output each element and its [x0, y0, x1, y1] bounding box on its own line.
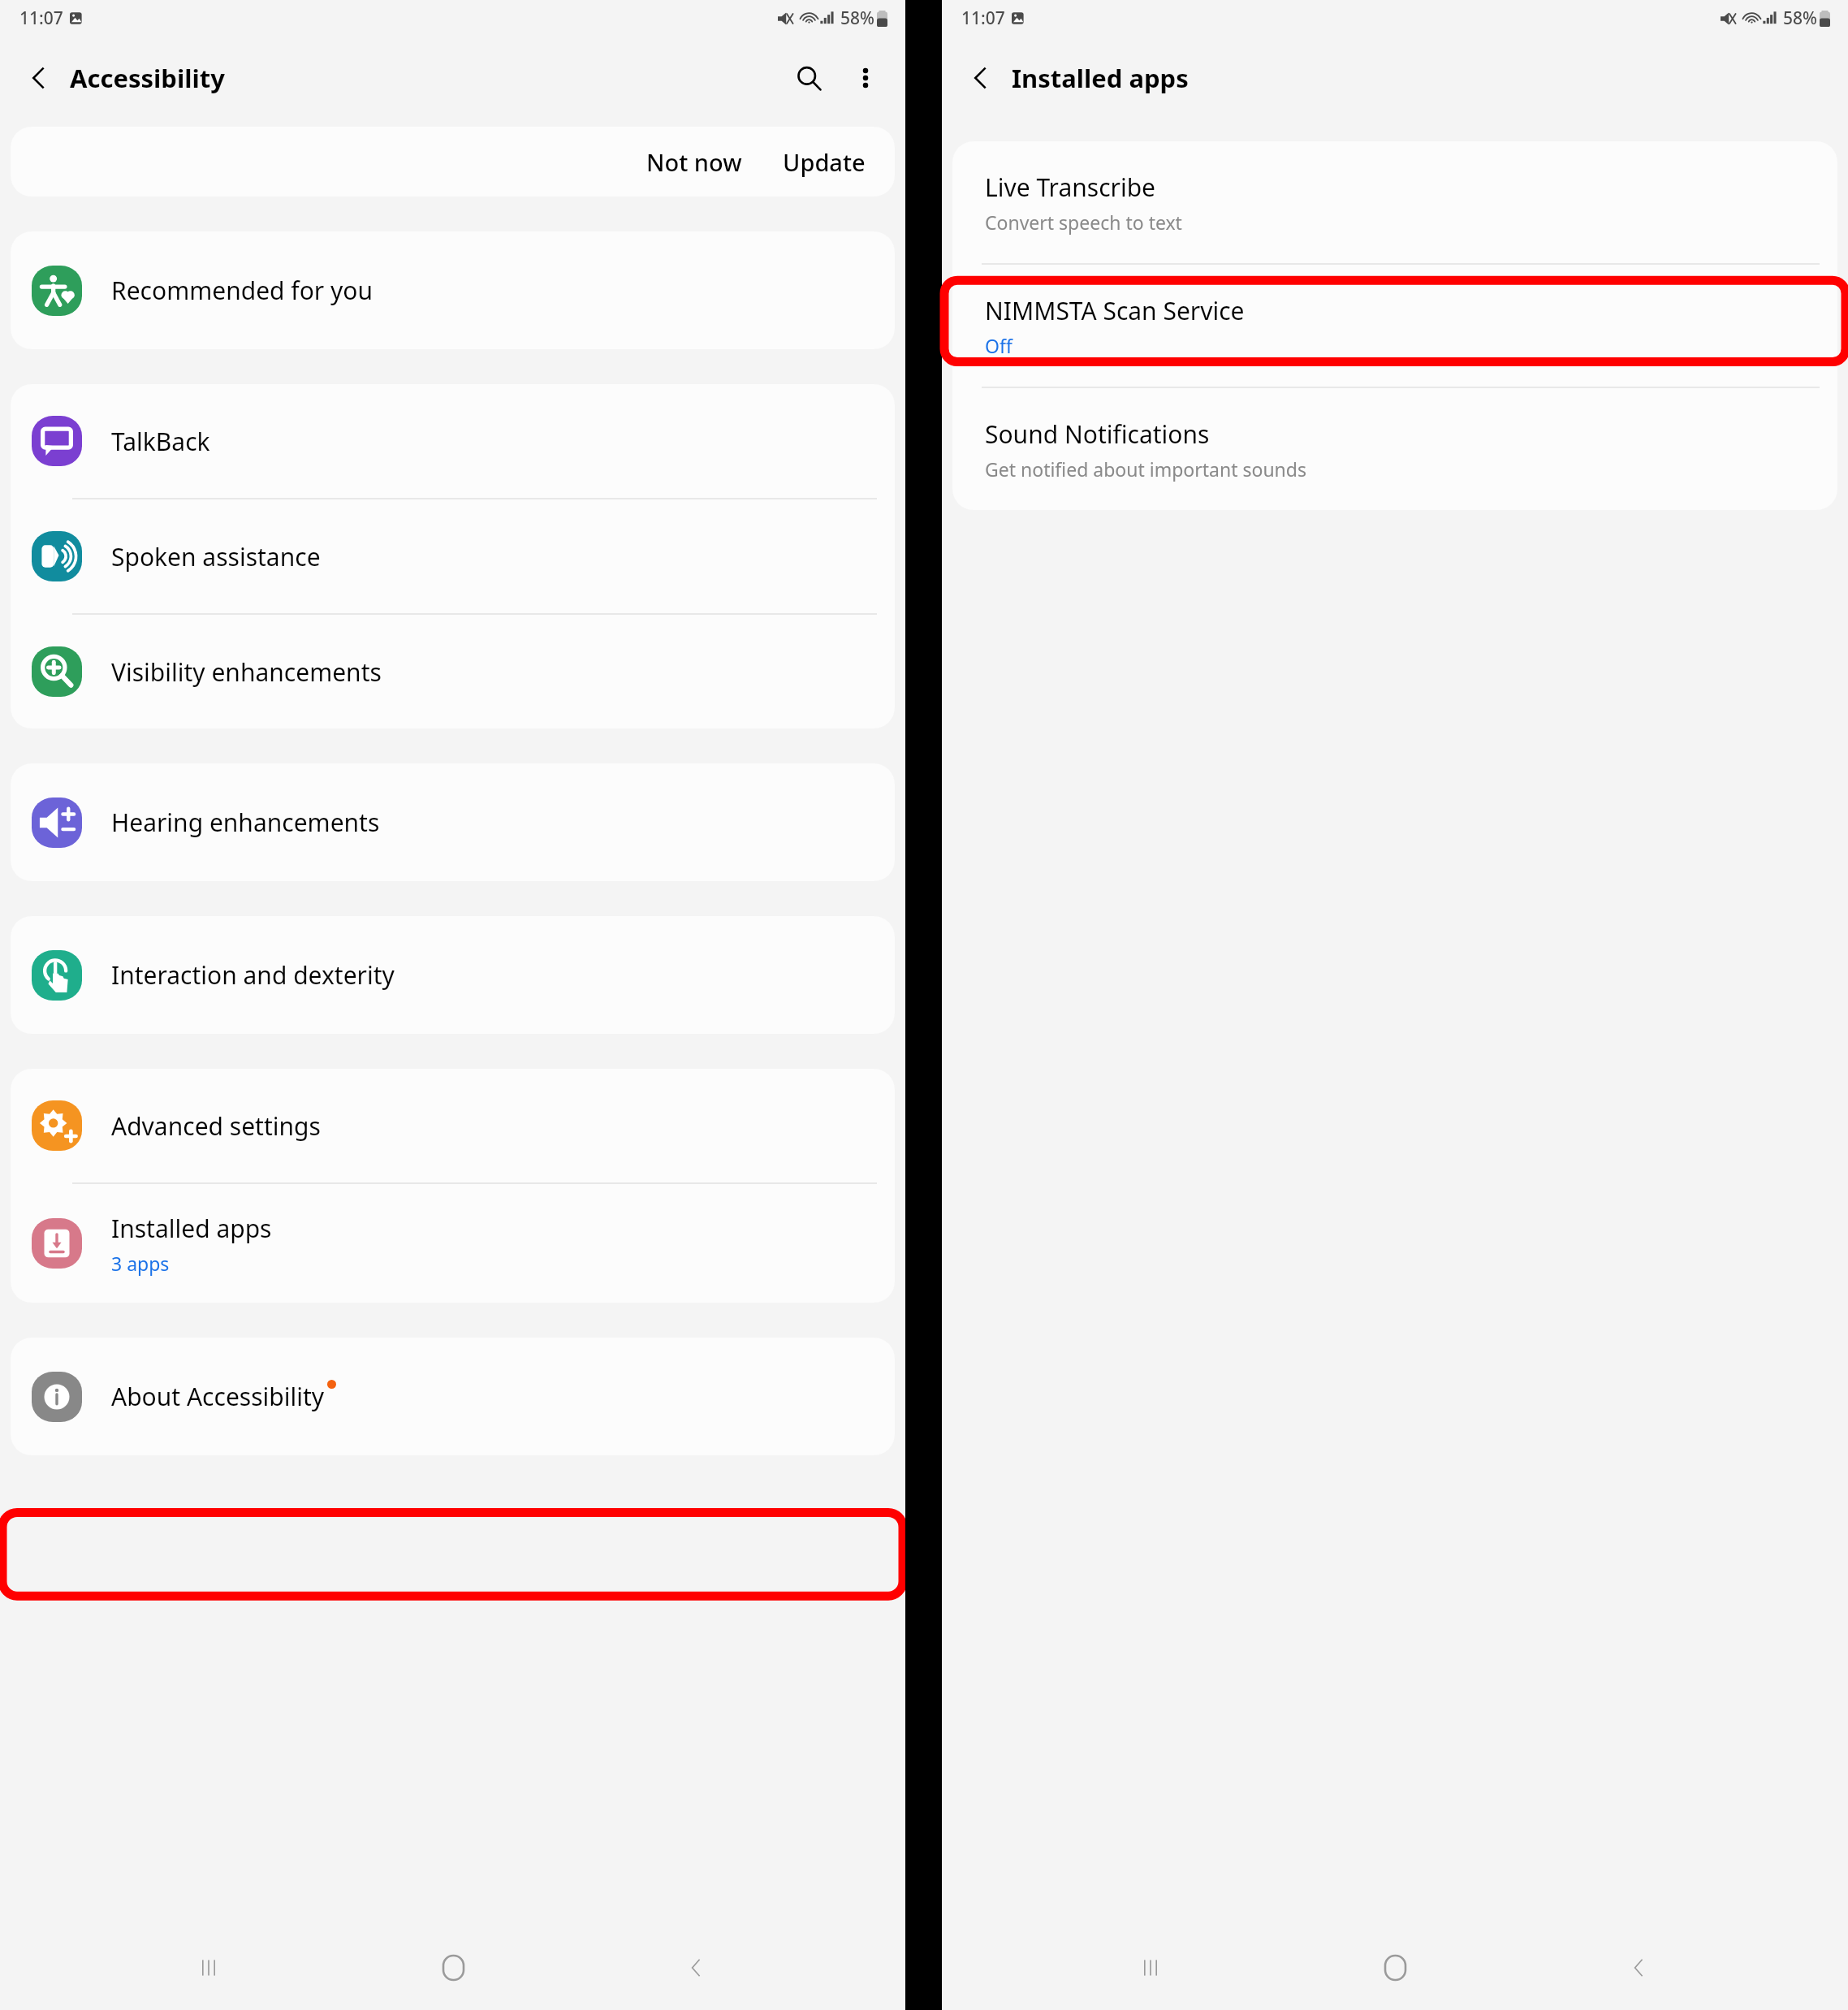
- staticText: 11:07: [961, 6, 1005, 30]
- button[interactable]: Not now: [635, 138, 753, 186]
- staticText: Convert speech to text: [985, 210, 1182, 235]
- staticText: Live Transcribe: [985, 171, 1156, 204]
- staticText: 11:07: [19, 6, 63, 30]
- button[interactable]: Sound Notifications: [952, 388, 1837, 510]
- button[interactable]: Hearing enhancements: [11, 763, 895, 881]
- button[interactable]: NIMMSTA Scan Service: [952, 265, 1837, 387]
- button[interactable]: TalkBack: [11, 384, 895, 498]
- staticText: Get notified about important sounds: [985, 456, 1306, 482]
- button[interactable]: Recommended for you: [11, 231, 895, 349]
- staticText: Installed apps: [111, 1212, 272, 1245]
- staticText: Interaction and dexterity: [111, 958, 395, 992]
- staticText: Visibility enhancements: [111, 655, 382, 689]
- button[interactable]: Advanced settings: [11, 1069, 895, 1182]
- staticText: Hearing enhancements: [111, 806, 380, 839]
- button[interactable]: Back: [960, 57, 1002, 99]
- staticText: Accessibility: [70, 61, 225, 95]
- button[interactable]: Recents: [1115, 1932, 1186, 2004]
- button[interactable]: Live Transcribe: [952, 141, 1837, 263]
- button[interactable]: About Accessibility: [11, 1338, 895, 1455]
- staticText: Update: [783, 146, 866, 178]
- staticText: NIMMSTA Scan Service: [985, 294, 1245, 327]
- button[interactable]: Update: [771, 138, 877, 186]
- staticText: Recommended for you: [111, 274, 373, 307]
- staticText: Sound Notifications: [985, 417, 1210, 451]
- button[interactable]: Back: [1604, 1932, 1675, 2004]
- staticText: Off: [985, 333, 1013, 358]
- staticText: 3 apps: [111, 1251, 170, 1276]
- staticText: TalkBack: [111, 425, 210, 458]
- button[interactable]: Installed apps: [11, 1184, 895, 1303]
- staticText: Advanced settings: [111, 1109, 321, 1143]
- button[interactable]: Interaction and dexterity: [11, 916, 895, 1034]
- staticText: Not now: [646, 146, 742, 178]
- button[interactable]: Visibility enhancements: [11, 615, 895, 728]
- button[interactable]: Spoken assistance: [11, 499, 895, 613]
- button[interactable]: Home: [1359, 1932, 1431, 2004]
- staticText: Installed apps: [1012, 61, 1189, 95]
- staticText: About Accessibility: [111, 1380, 325, 1413]
- staticText: 58%: [1783, 6, 1817, 30]
- button[interactable]: Recents: [173, 1932, 244, 2004]
- staticText: Spoken assistance: [111, 540, 321, 573]
- button[interactable]: Search: [787, 56, 831, 100]
- button[interactable]: Home: [417, 1932, 489, 2004]
- button[interactable]: Back: [661, 1932, 732, 2004]
- button[interactable]: Back: [18, 57, 60, 99]
- button[interactable]: More options: [844, 56, 887, 100]
- staticText: 58%: [840, 6, 874, 30]
